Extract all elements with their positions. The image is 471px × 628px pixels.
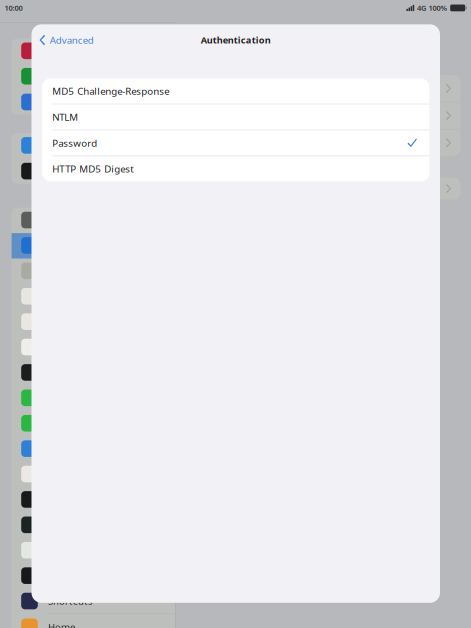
staticText: Authentication [201, 34, 271, 46]
button[interactable]: HTTP MD5 Digest [42, 156, 429, 181]
button[interactable]: Passwords [12, 208, 175, 233]
button[interactable]: Shortcuts [12, 589, 175, 614]
button[interactable]: Messages [12, 385, 175, 411]
button[interactable]: NTLM [42, 104, 429, 129]
button[interactable]: Safari [12, 436, 175, 462]
button[interactable]: Password [42, 130, 429, 155]
button[interactable]: Reminders [12, 335, 175, 360]
button[interactable]: Notes [12, 309, 175, 335]
button[interactable]: Advanced [31, 26, 94, 54]
button[interactable]: Freeform [12, 360, 175, 385]
button[interactable]: Wallet [12, 158, 175, 184]
staticText: App Store [48, 139, 93, 152]
staticText: MD5 Challenge-Response [52, 84, 169, 98]
staticText: Advanced [50, 33, 94, 47]
staticText: Wi-Fi [193, 32, 216, 45]
button[interactable]: Translate [12, 512, 175, 538]
button[interactable]: Home [12, 614, 175, 628]
button[interactable]: Contacts [12, 258, 175, 284]
button[interactable]: Mail [12, 233, 175, 258]
button[interactable]: Stocks [12, 487, 175, 512]
button[interactable]: Calendar [12, 284, 175, 309]
staticText: 100% [429, 3, 448, 13]
button[interactable]: Privacy & Security [12, 38, 175, 64]
button[interactable]: iCloud [12, 89, 175, 115]
button[interactable]: Maps [12, 538, 175, 563]
staticText: 4G [417, 3, 426, 13]
staticText: HTTP MD5 Digest [52, 162, 134, 175]
staticText: Home [48, 620, 75, 628]
staticText: iCloud [48, 95, 78, 109]
staticText: Game Center [48, 70, 107, 83]
button[interactable]: Game Center [12, 64, 175, 89]
staticText: NTLM [52, 110, 78, 124]
button[interactable]: MD5 Challenge-Response [42, 78, 429, 104]
button[interactable]: Health [12, 563, 175, 589]
staticText: Password [52, 136, 97, 149]
staticText: 10:00 [5, 3, 23, 13]
staticText: Wallet [48, 164, 77, 178]
button[interactable]: FaceTime [12, 411, 175, 436]
staticText: Shortcuts [48, 594, 93, 608]
button[interactable]: News [12, 462, 175, 487]
button[interactable]: App Store [12, 133, 175, 158]
